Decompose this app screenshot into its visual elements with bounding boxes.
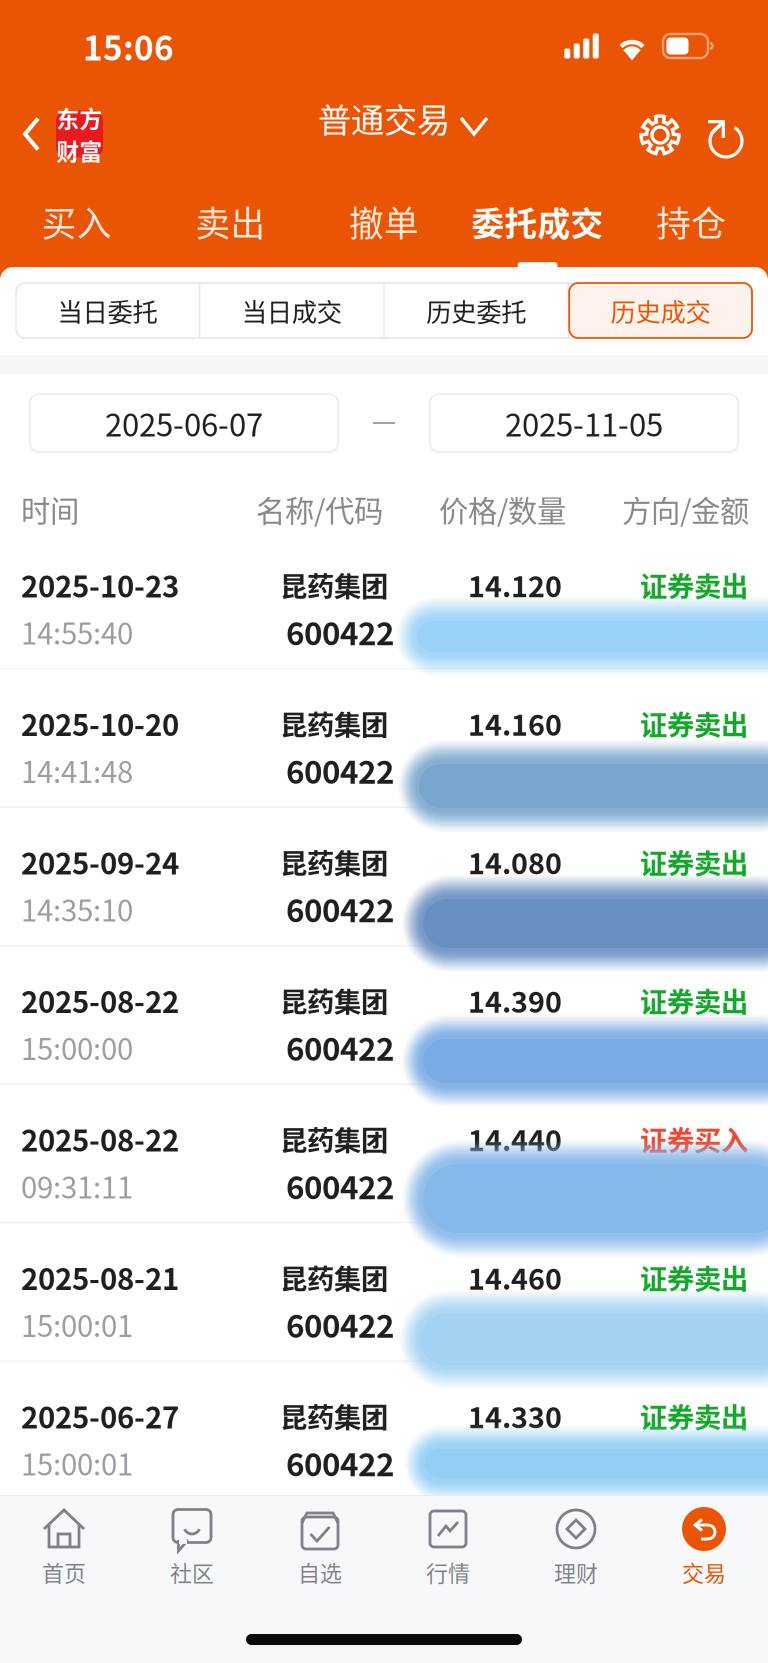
staticText: 600422 [286, 886, 394, 931]
staticText: 价格/数量 [439, 488, 566, 530]
button[interactable]: Refresh [699, 114, 753, 170]
staticText: 600422 [286, 1440, 394, 1485]
staticText: 14.390 [468, 979, 562, 1021]
staticText: 15:06 [83, 22, 174, 70]
button[interactable]: 2025-10-23 [0, 531, 768, 668]
button[interactable]: 历史委托 [385, 283, 568, 338]
button[interactable]: 历史成交 [569, 283, 752, 338]
staticText: 证券卖出 [640, 980, 748, 1020]
button[interactable]: 当日成交 [200, 283, 383, 338]
button[interactable]: 自选 [256, 1496, 384, 1598]
staticText: 600422 [286, 609, 394, 654]
staticText: 昆药集团 [280, 703, 388, 743]
button[interactable]: 当日委托 [16, 283, 199, 338]
staticText: 当日成交 [242, 292, 342, 329]
staticText: 14.160 [468, 702, 562, 744]
staticText: 昆药集团 [280, 980, 388, 1020]
staticText: 昆药集团 [280, 842, 388, 881]
button[interactable]: 理财 [512, 1496, 640, 1598]
button[interactable]: 买入 [0, 184, 154, 276]
staticText: 撤单 [349, 196, 419, 247]
staticText: 证券买入 [640, 1119, 748, 1158]
staticText: 14.120 [468, 564, 562, 605]
staticText: 证券卖出 [640, 703, 748, 743]
button[interactable]: 2025-06-27 [0, 1362, 768, 1499]
staticText: 14.330 [468, 1395, 562, 1436]
button[interactable]: 卖出 [154, 184, 307, 276]
staticText: 昆药集团 [280, 565, 388, 604]
button[interactable]: Back [0, 112, 109, 171]
staticText: 委托成交 [472, 198, 604, 245]
staticText: 历史委托 [426, 292, 526, 329]
button[interactable]: 社区 [128, 1496, 256, 1598]
staticText: 行情 [426, 1556, 470, 1588]
staticText: 2025-11-05 [505, 400, 663, 445]
button[interactable]: 2025-08-22 [0, 1085, 768, 1222]
staticText: 方向/金额 [622, 488, 749, 530]
staticText: 持仓 [656, 196, 726, 247]
staticText: 时间 [21, 488, 79, 530]
staticText: 2025-08-22 [21, 1117, 179, 1160]
button[interactable]: 普通交易 [279, 92, 489, 144]
staticText: 14:35:10 [21, 887, 133, 930]
button[interactable]: 2025-10-20 [0, 669, 768, 806]
staticText: 600422 [286, 747, 394, 793]
button[interactable]: 撤单 [307, 184, 461, 276]
staticText: 自选 [298, 1556, 342, 1588]
button[interactable]: 行情 [384, 1496, 512, 1598]
staticText: 14:55:40 [21, 610, 133, 653]
staticText: 15:00:01 [21, 1303, 133, 1345]
staticText: 2025-08-22 [21, 979, 179, 1021]
staticText: 14.460 [468, 1256, 562, 1298]
staticText: 财富 [56, 134, 102, 167]
button[interactable]: 首页 [0, 1496, 128, 1598]
staticText: 昆药集团 [280, 1119, 388, 1158]
staticText: 买入 [42, 196, 112, 247]
staticText: 昆药集团 [280, 1396, 388, 1435]
staticText: 2025-09-24 [21, 840, 179, 883]
staticText: 15:00:01 [21, 1441, 133, 1484]
button[interactable]: 持仓 [614, 184, 768, 276]
staticText: 历史成交 [611, 292, 711, 329]
button[interactable]: 委托成交 [461, 186, 614, 274]
staticText: 卖出 [195, 196, 265, 247]
staticText: 2025-06-27 [21, 1394, 179, 1437]
button[interactable]: Settings [629, 112, 691, 172]
staticText: 名称/代码 [256, 488, 383, 530]
staticText: 普通交易 [318, 94, 450, 142]
staticText: 证券卖出 [640, 1257, 748, 1297]
staticText: 14:41:48 [21, 749, 133, 791]
staticText: 证券卖出 [640, 842, 748, 881]
staticText: 证券卖出 [640, 1396, 748, 1435]
staticText: 社区 [170, 1556, 214, 1588]
staticText: 14.440 [468, 1118, 562, 1159]
staticText: 15:00:00 [21, 1026, 133, 1068]
staticText: 600422 [286, 1163, 394, 1208]
button[interactable]: 2025-08-22 [0, 946, 768, 1083]
staticText: 2025-08-21 [21, 1256, 179, 1298]
button[interactable]: 2025-09-24 [0, 808, 768, 945]
staticText: 当日委托 [57, 292, 157, 329]
button[interactable]: 2025-08-21 [0, 1223, 768, 1360]
staticText: 2025-10-23 [21, 563, 179, 606]
staticText: 2025-06-07 [105, 400, 263, 445]
staticText: 09:31:11 [21, 1164, 133, 1207]
button[interactable]: 交易 [640, 1496, 768, 1598]
staticText: 600422 [286, 1024, 394, 1070]
staticText: 2025-10-20 [21, 702, 179, 744]
staticText: 交易 [682, 1556, 726, 1588]
staticText: 东方 [56, 101, 102, 134]
staticText: 理财 [554, 1556, 598, 1588]
staticText: 昆药集团 [280, 1257, 388, 1297]
button[interactable]: 2025-11-05 [430, 394, 738, 452]
staticText: 证券卖出 [640, 565, 748, 604]
button[interactable]: 2025-06-07 [30, 394, 338, 452]
staticText: 首页 [42, 1556, 86, 1588]
staticText: 600422 [286, 1301, 394, 1347]
staticText: 14.080 [468, 841, 562, 882]
